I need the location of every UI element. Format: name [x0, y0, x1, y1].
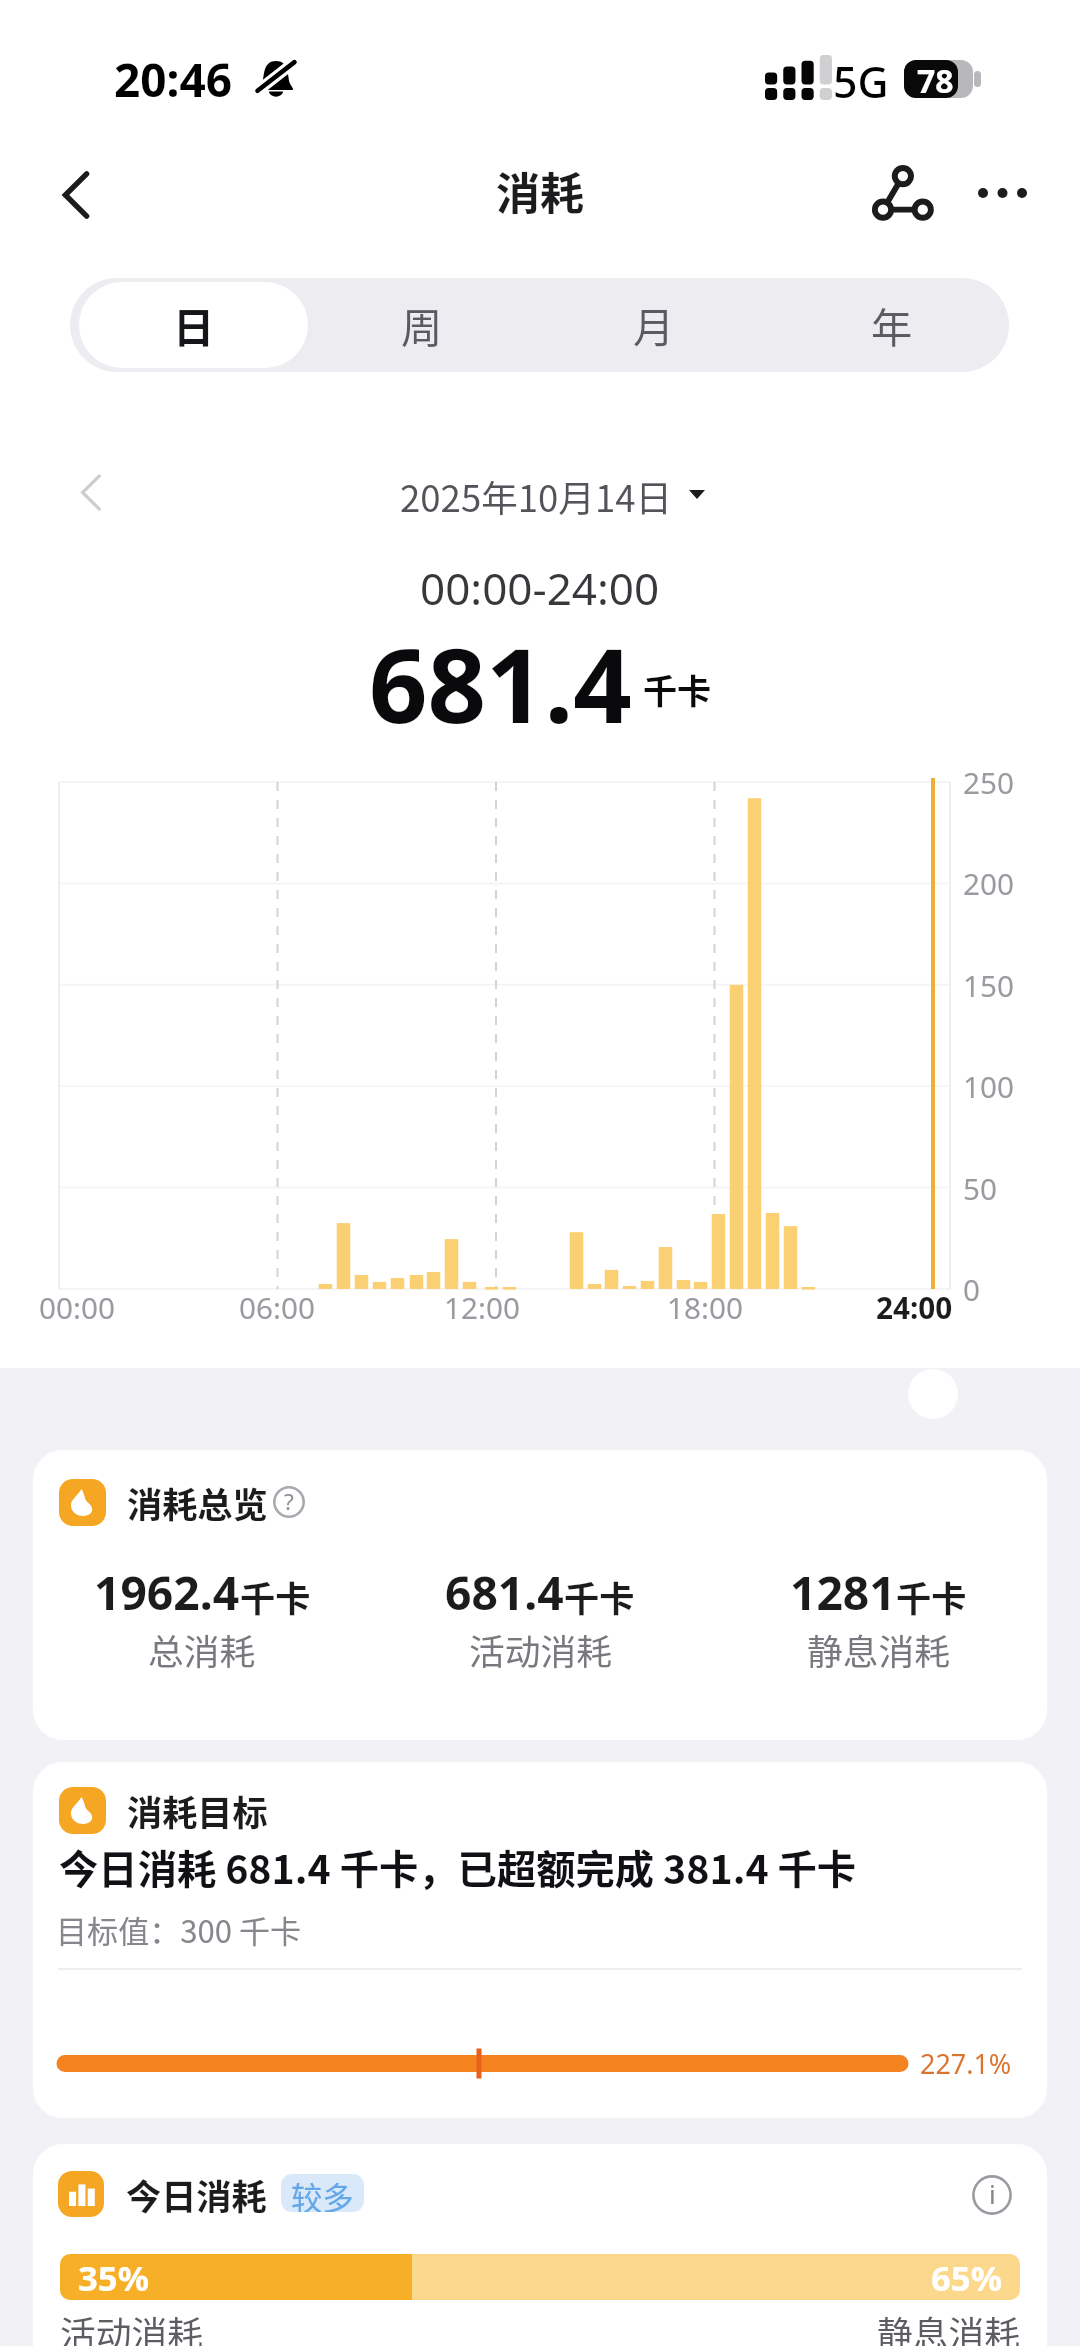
- staticText: 日: [173, 295, 215, 355]
- staticText: 24:00: [876, 1287, 953, 1327]
- button[interactable]: Previous day: [61, 462, 121, 522]
- staticText: 2025年10月14日: [400, 470, 673, 518]
- staticText: 06:00: [239, 1287, 315, 1327]
- staticText: 150: [963, 965, 1014, 1005]
- button[interactable]: 日: [84, 282, 304, 368]
- staticText: 千卡: [564, 1571, 635, 1622]
- staticText: 1281: [790, 1561, 896, 1624]
- button[interactable]: Back: [45, 164, 107, 226]
- staticText: 千卡: [643, 664, 712, 713]
- staticText: 较多: [291, 2174, 354, 2212]
- staticText: 千卡: [240, 1571, 311, 1622]
- staticText: 18:00: [667, 1287, 743, 1327]
- staticText: 681.4: [445, 1561, 564, 1624]
- staticText: 50: [963, 1168, 997, 1208]
- staticText: 65%: [931, 2254, 1002, 2300]
- button[interactable]: More options: [960, 158, 1044, 228]
- staticText: 消耗: [496, 159, 584, 219]
- staticText: 35%: [78, 2254, 149, 2300]
- button[interactable]: 年: [782, 282, 1002, 368]
- staticText: 目标值：300 千卡: [56, 1907, 302, 1952]
- staticText: ?: [284, 1486, 294, 1517]
- staticText: 00:00: [39, 1287, 115, 1327]
- button[interactable]: Help: [262, 1475, 316, 1529]
- staticText: 消耗总览: [127, 1477, 268, 1528]
- staticText: 250: [963, 762, 1014, 802]
- staticText: 消耗目标: [127, 1785, 268, 1836]
- button[interactable]: 周: [312, 282, 532, 368]
- staticText: 12:00: [444, 1287, 520, 1327]
- staticText: 月: [633, 295, 675, 355]
- staticText: 年: [871, 295, 913, 355]
- staticText: 681.4: [369, 614, 632, 724]
- staticText: 今日消耗: [126, 2169, 267, 2220]
- staticText: 1962.4: [94, 1561, 240, 1624]
- button[interactable]: 较多: [281, 2174, 364, 2212]
- staticText: 100: [963, 1066, 1014, 1106]
- staticText: 5G: [833, 52, 889, 106]
- staticText: 总消耗: [148, 1624, 256, 1676]
- staticText: 00:00-24:00: [420, 558, 660, 618]
- staticText: 78: [917, 59, 954, 97]
- button[interactable]: Share: [862, 152, 946, 236]
- staticText: 静息消耗: [877, 2306, 1020, 2346]
- staticText: 227.1%: [920, 2045, 1012, 2082]
- button[interactable]: 2025年10月14日: [400, 470, 705, 518]
- staticText: 活动消耗: [60, 2306, 203, 2346]
- staticText: 周: [401, 295, 443, 355]
- button[interactable]: Info: [965, 2168, 1019, 2222]
- staticText: 0: [963, 1269, 980, 1309]
- staticText: 200: [963, 863, 1014, 903]
- staticText: 静息消耗: [807, 1624, 950, 1676]
- staticText: 今日消耗 681.4 千卡，已超额完成 381.4 千卡: [59, 1838, 857, 1892]
- staticText: 活动消耗: [469, 1624, 612, 1676]
- staticText: 千卡: [896, 1571, 967, 1622]
- staticText: i: [989, 2176, 996, 2212]
- staticText: 20:46: [114, 48, 232, 110]
- button[interactable]: 月: [544, 282, 764, 368]
